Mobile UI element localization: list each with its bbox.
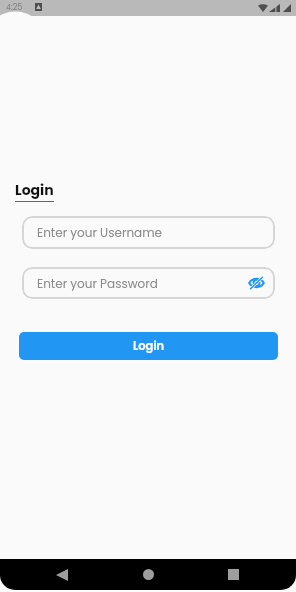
staticText: Enter your Password: [37, 275, 158, 292]
button[interactable]: Back: [46, 559, 78, 590]
staticText: 4:25: [6, 2, 23, 13]
button[interactable]: Enter your Username: [22, 216, 275, 249]
button[interactable]: Enter your Password: [22, 267, 275, 299]
staticText: Login: [133, 338, 165, 354]
button[interactable]: Recent apps: [217, 559, 249, 590]
staticText: Login: [15, 180, 54, 200]
staticText: Enter your Username: [37, 224, 162, 241]
button[interactable]: Home: [132, 559, 164, 590]
button[interactable]: Show password: [244, 271, 268, 295]
button[interactable]: Login: [19, 332, 278, 360]
